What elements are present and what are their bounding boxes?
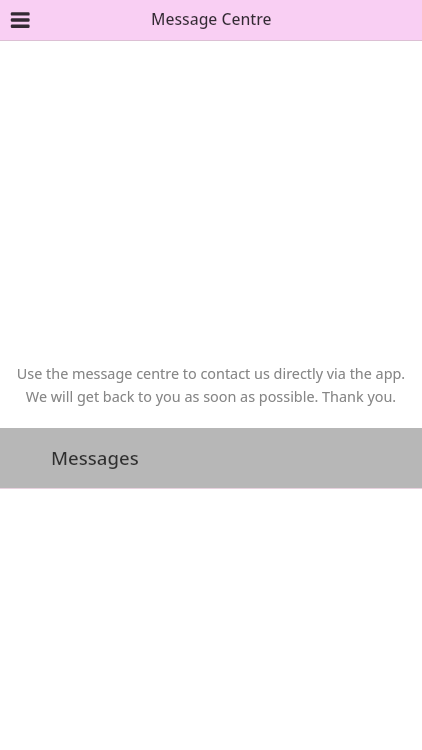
staticText: Message Centre bbox=[151, 8, 272, 29]
button[interactable]: Messages bbox=[0, 428, 422, 488]
button[interactable]: Open navigation menu bbox=[0, 0, 40, 40]
staticText: Messages bbox=[51, 445, 139, 470]
staticText: Use the message centre to contact us dir… bbox=[0, 364, 422, 406]
